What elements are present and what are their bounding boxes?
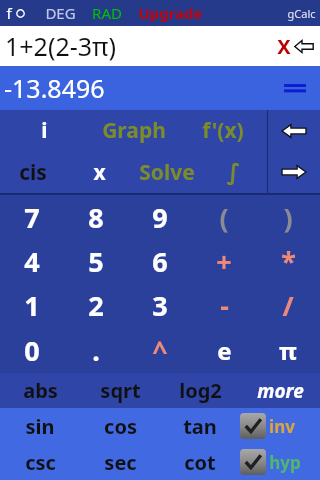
button[interactable]: Upgrade	[138, 3, 203, 23]
button[interactable]: sec	[80, 444, 160, 480]
button[interactable]: .	[64, 328, 128, 373]
button[interactable]: 4	[0, 239, 64, 283]
button[interactable]: 6	[128, 239, 192, 283]
staticText: f'(x)	[202, 116, 244, 145]
button[interactable]: cis	[0, 151, 66, 193]
button[interactable]: hyp	[240, 444, 320, 480]
staticText: 1	[24, 287, 40, 324]
staticText: 0	[24, 332, 40, 369]
staticText: 6	[152, 243, 168, 280]
staticText: tan	[183, 413, 217, 440]
staticText: -	[220, 287, 229, 324]
button[interactable]: 2	[64, 283, 128, 328]
staticText: (	[219, 199, 229, 236]
button[interactable]: 9	[128, 195, 192, 239]
staticText: /	[282, 287, 294, 324]
staticText: 2	[88, 287, 104, 324]
staticText: *	[281, 243, 296, 280]
button[interactable]: *	[256, 239, 320, 283]
button[interactable]: )	[256, 195, 320, 239]
staticText: sec	[104, 449, 137, 476]
button[interactable]: more	[240, 373, 320, 408]
staticText: cot	[184, 449, 216, 476]
staticText: csc	[25, 449, 56, 476]
button[interactable]: 8	[64, 195, 128, 239]
staticText: 7	[24, 199, 40, 236]
button[interactable]: Graph	[89, 110, 178, 151]
button[interactable]: Function toggle	[6, 3, 25, 23]
button[interactable]: sqrt	[80, 373, 160, 408]
staticText: i	[41, 116, 48, 145]
button[interactable]: 1+2(2-3π)	[0, 26, 320, 66]
button[interactable]: /	[256, 283, 320, 328]
button[interactable]: (	[192, 195, 256, 239]
button[interactable]: 3	[128, 283, 192, 328]
staticText: DEG	[45, 3, 76, 23]
button[interactable]: +	[192, 239, 256, 283]
staticText: cis	[19, 158, 47, 187]
staticText: x	[93, 158, 106, 187]
staticText: e	[217, 334, 232, 367]
staticText: more	[257, 378, 304, 404]
button[interactable]: tan	[160, 408, 240, 444]
staticText: )	[283, 199, 293, 236]
staticText: f	[6, 3, 12, 23]
button[interactable]: -13.8496	[0, 66, 320, 110]
staticText: -13.8496	[4, 71, 105, 105]
staticText: 5	[88, 243, 104, 280]
button[interactable]: -	[192, 283, 256, 328]
button[interactable]: Move cursor left	[268, 110, 320, 151]
staticText: 3	[152, 287, 168, 324]
button[interactable]: sin	[0, 408, 80, 444]
staticText: hyp	[269, 451, 301, 474]
staticText: gCalc	[287, 6, 316, 21]
staticText: 9	[152, 199, 168, 236]
button[interactable]: Solve	[133, 151, 200, 193]
staticText: Upgrade	[138, 3, 203, 23]
staticText: X	[277, 33, 291, 60]
staticText: sin	[25, 413, 55, 440]
staticText: abs	[23, 377, 58, 404]
staticText: Solve	[139, 158, 195, 187]
button[interactable]: π	[256, 328, 320, 373]
staticText: Graph	[102, 116, 166, 145]
staticText: log2	[179, 377, 222, 404]
staticText: inv	[269, 415, 295, 438]
button[interactable]: x	[66, 151, 133, 193]
button[interactable]: Clear and backspace	[277, 33, 314, 60]
button[interactable]: ∫	[200, 151, 267, 193]
staticText: cos	[104, 413, 137, 440]
staticText: ∫	[226, 159, 241, 186]
button[interactable]: csc	[0, 444, 80, 480]
staticText: ^	[152, 332, 168, 369]
button[interactable]: cot	[160, 444, 240, 480]
staticText: RAD	[92, 3, 122, 23]
button[interactable]: 5	[64, 239, 128, 283]
button[interactable]: DEG	[45, 3, 76, 23]
staticText: +	[216, 243, 232, 280]
button[interactable]: i	[0, 110, 89, 151]
button[interactable]: 7	[0, 195, 64, 239]
staticText: sqrt	[100, 377, 141, 404]
button[interactable]: ^	[128, 328, 192, 373]
button[interactable]: RAD	[92, 3, 122, 23]
staticText: π	[279, 334, 297, 367]
button[interactable]: log2	[160, 373, 240, 408]
staticText: 8	[88, 199, 104, 236]
button[interactable]: cos	[80, 408, 160, 444]
staticText: 4	[24, 243, 40, 280]
button[interactable]: f'(x)	[178, 110, 267, 151]
other: Equals	[284, 81, 306, 95]
button[interactable]: 1	[0, 283, 64, 328]
button[interactable]: inv	[240, 408, 320, 444]
button[interactable]: e	[192, 328, 256, 373]
button[interactable]: abs	[0, 373, 80, 408]
staticText: 1+2(2-3π)	[5, 29, 116, 63]
button[interactable]: 0	[0, 328, 64, 373]
button[interactable]: Move cursor right	[268, 151, 320, 193]
staticText: .	[92, 332, 100, 369]
